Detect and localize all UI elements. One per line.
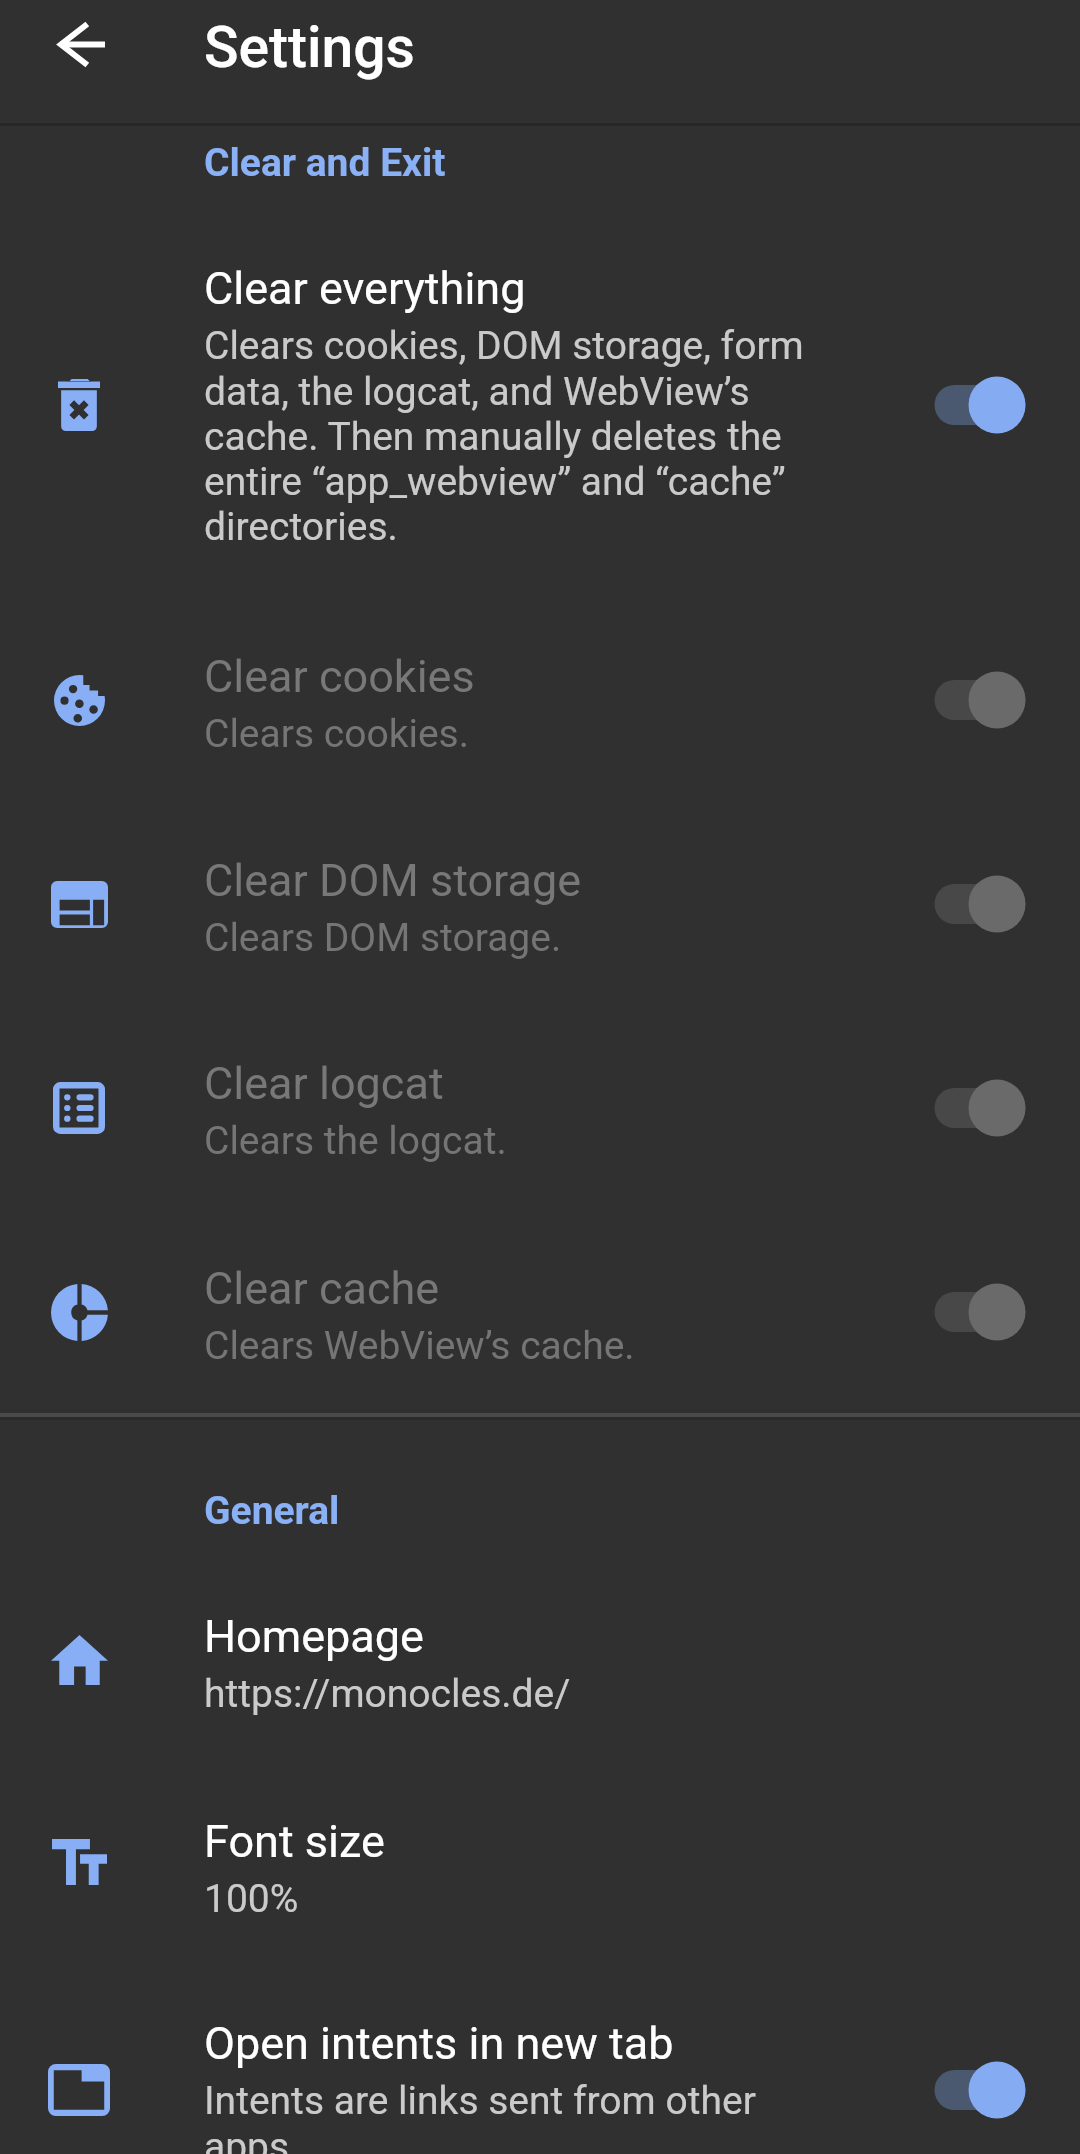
button[interactable]: Open intents in new tab toggle <box>937 2052 1057 2128</box>
button[interactable]: Clear logcat <box>0 1039 1080 1171</box>
staticText: Font size <box>204 1815 385 1868</box>
staticText: Clear logcat <box>204 1057 444 1110</box>
staticText: Open intents in new tab <box>204 2017 674 2070</box>
button[interactable]: Navigate up <box>19 0 143 106</box>
button[interactable]: Clear DOM storage toggle <box>937 866 1057 942</box>
staticText: Clears cookies, DOM storage, form data, … <box>204 323 804 549</box>
staticText: General <box>204 1488 340 1534</box>
button[interactable]: Clear cache toggle <box>937 1274 1057 1350</box>
staticText: Clear and Exit <box>204 140 446 186</box>
button[interactable]: Homepage <box>0 1592 1080 1724</box>
staticText: Clear cookies <box>204 650 475 703</box>
staticText: Clears the logcat. <box>204 1118 804 1164</box>
staticText: Clears cookies. <box>204 711 804 757</box>
staticText: Clears DOM storage. <box>204 915 804 961</box>
staticText: https://monocles.de/ <box>204 1671 804 1717</box>
button[interactable]: Font size <box>0 1797 1080 1929</box>
button[interactable]: Clear cookies toggle <box>937 662 1057 738</box>
staticText: Intents are links sent from other apps <box>204 2078 804 2154</box>
button[interactable]: Clear everything toggle <box>937 367 1057 443</box>
staticText: 100% <box>204 1876 804 1922</box>
button[interactable]: Clear logcat toggle <box>937 1070 1057 1146</box>
staticText: Clear cache <box>204 1262 440 1315</box>
staticText: Clear DOM storage <box>204 854 582 907</box>
staticText: Homepage <box>204 1610 424 1663</box>
staticText: Clears WebView’s cache. <box>204 1323 804 1369</box>
button[interactable]: Clear DOM storage <box>0 836 1080 968</box>
button[interactable]: Open intents in new tab <box>0 1999 1080 2154</box>
button[interactable]: Clear cookies <box>0 632 1080 764</box>
button[interactable]: Clear everything <box>0 244 1080 558</box>
staticText: Clear everything <box>204 262 526 315</box>
staticText: Settings <box>204 14 415 81</box>
button[interactable]: Clear cache <box>0 1244 1080 1376</box>
